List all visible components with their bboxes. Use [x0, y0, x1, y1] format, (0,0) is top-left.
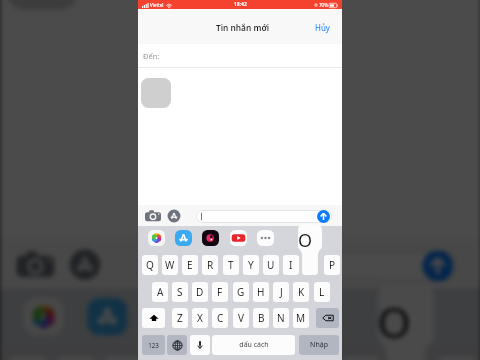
staticText: P — [329, 258, 336, 272]
button[interactable]: B — [253, 308, 269, 328]
button[interactable]: E — [104, 357, 142, 360]
staticText: F — [217, 285, 223, 299]
button[interactable]: N — [273, 308, 289, 328]
button[interactable]: dấu cách — [212, 335, 295, 355]
button[interactable]: Photos — [148, 230, 165, 246]
button[interactable]: Nhập — [299, 335, 339, 355]
staticText: Đến: — [143, 51, 160, 61]
button[interactable]: Shift — [142, 308, 165, 328]
button[interactable]: Contact avatar — [7, 0, 78, 10]
button[interactable]: App Store — [167, 209, 181, 223]
staticText: L — [319, 285, 325, 299]
button[interactable]: Q — [142, 255, 158, 275]
button[interactable]: More — [281, 298, 321, 336]
staticText: Tin nhắn mới — [216, 22, 270, 33]
staticText: dấu cách — [239, 340, 269, 350]
staticText: J — [280, 285, 283, 299]
staticText: C — [217, 311, 224, 325]
button[interactable]: Hủy — [315, 22, 342, 33]
button[interactable]: M — [293, 308, 309, 328]
button[interactable]: Photos — [24, 298, 64, 336]
button[interactable]: H — [253, 282, 269, 302]
button[interactable]: A — [152, 282, 168, 302]
staticText: K — [298, 285, 305, 299]
button[interactable]: Send — [317, 210, 330, 223]
staticText: Viettel — [150, 2, 164, 8]
staticText: V — [238, 311, 244, 325]
staticText: U — [267, 258, 275, 272]
button[interactable]: S — [172, 282, 188, 302]
staticText: H — [257, 285, 265, 299]
button[interactable]: X — [192, 308, 208, 328]
button[interactable]: J — [273, 282, 289, 302]
staticText: G — [237, 285, 245, 299]
staticText: W — [165, 258, 175, 272]
button[interactable]: Change keyboard — [167, 335, 187, 355]
button[interactable]: App Store — [87, 298, 127, 336]
button[interactable] — [196, 210, 332, 223]
staticText: 70% — [319, 2, 328, 8]
staticText: B — [258, 311, 265, 325]
staticText: Z — [177, 311, 183, 325]
staticText: A — [157, 285, 164, 299]
button[interactable]: R — [202, 255, 218, 275]
staticText: O — [298, 228, 313, 253]
button[interactable]: D — [192, 282, 208, 302]
button[interactable]: Y — [243, 255, 259, 275]
button[interactable]: Backspace — [316, 308, 339, 328]
staticText: N — [277, 311, 285, 325]
staticText: R — [207, 258, 214, 272]
button[interactable]: I — [283, 255, 299, 275]
button[interactable]: V — [233, 308, 249, 328]
staticText: S — [177, 285, 183, 299]
button[interactable]: Z — [172, 308, 188, 328]
button[interactable]: F — [212, 282, 228, 302]
button[interactable]: Music — [202, 230, 219, 246]
button[interactable]: Send — [422, 251, 453, 281]
staticText: 123 — [148, 341, 159, 349]
staticText: 18:42 — [234, 1, 247, 8]
button[interactable]: Camera — [16, 251, 54, 279]
staticText: O — [378, 293, 413, 352]
button[interactable]: P — [324, 255, 340, 275]
staticText: Y — [248, 258, 254, 272]
button[interactable]: YouTube — [217, 298, 257, 336]
button[interactable]: Contact avatar — [141, 78, 171, 108]
button[interactable]: W — [162, 255, 178, 275]
button[interactable]: App Store — [68, 248, 101, 281]
button[interactable]: C — [212, 308, 228, 328]
staticText: X — [197, 311, 203, 325]
button[interactable]: L — [314, 282, 330, 302]
staticText: Nhập — [310, 340, 328, 350]
button[interactable]: U — [263, 255, 279, 275]
staticText: D — [196, 285, 204, 299]
button[interactable] — [137, 251, 458, 281]
button[interactable]: Camera — [145, 210, 161, 222]
button[interactable]: Music — [151, 298, 191, 336]
button[interactable]: T — [223, 255, 239, 275]
button[interactable]: G — [233, 282, 249, 302]
staticText: Q — [146, 258, 154, 272]
staticText: M — [296, 311, 306, 325]
staticText: T — [228, 258, 234, 272]
button[interactable]: E — [182, 255, 198, 275]
button[interactable]: App Store — [175, 230, 192, 246]
staticText: I — [289, 258, 293, 272]
button[interactable]: More — [257, 230, 274, 246]
button[interactable]: 123 — [142, 335, 165, 355]
button[interactable]: K — [293, 282, 309, 302]
button[interactable]: YouTube — [230, 230, 247, 246]
staticText: E — [187, 258, 193, 272]
button[interactable]: Dictate — [190, 335, 210, 355]
